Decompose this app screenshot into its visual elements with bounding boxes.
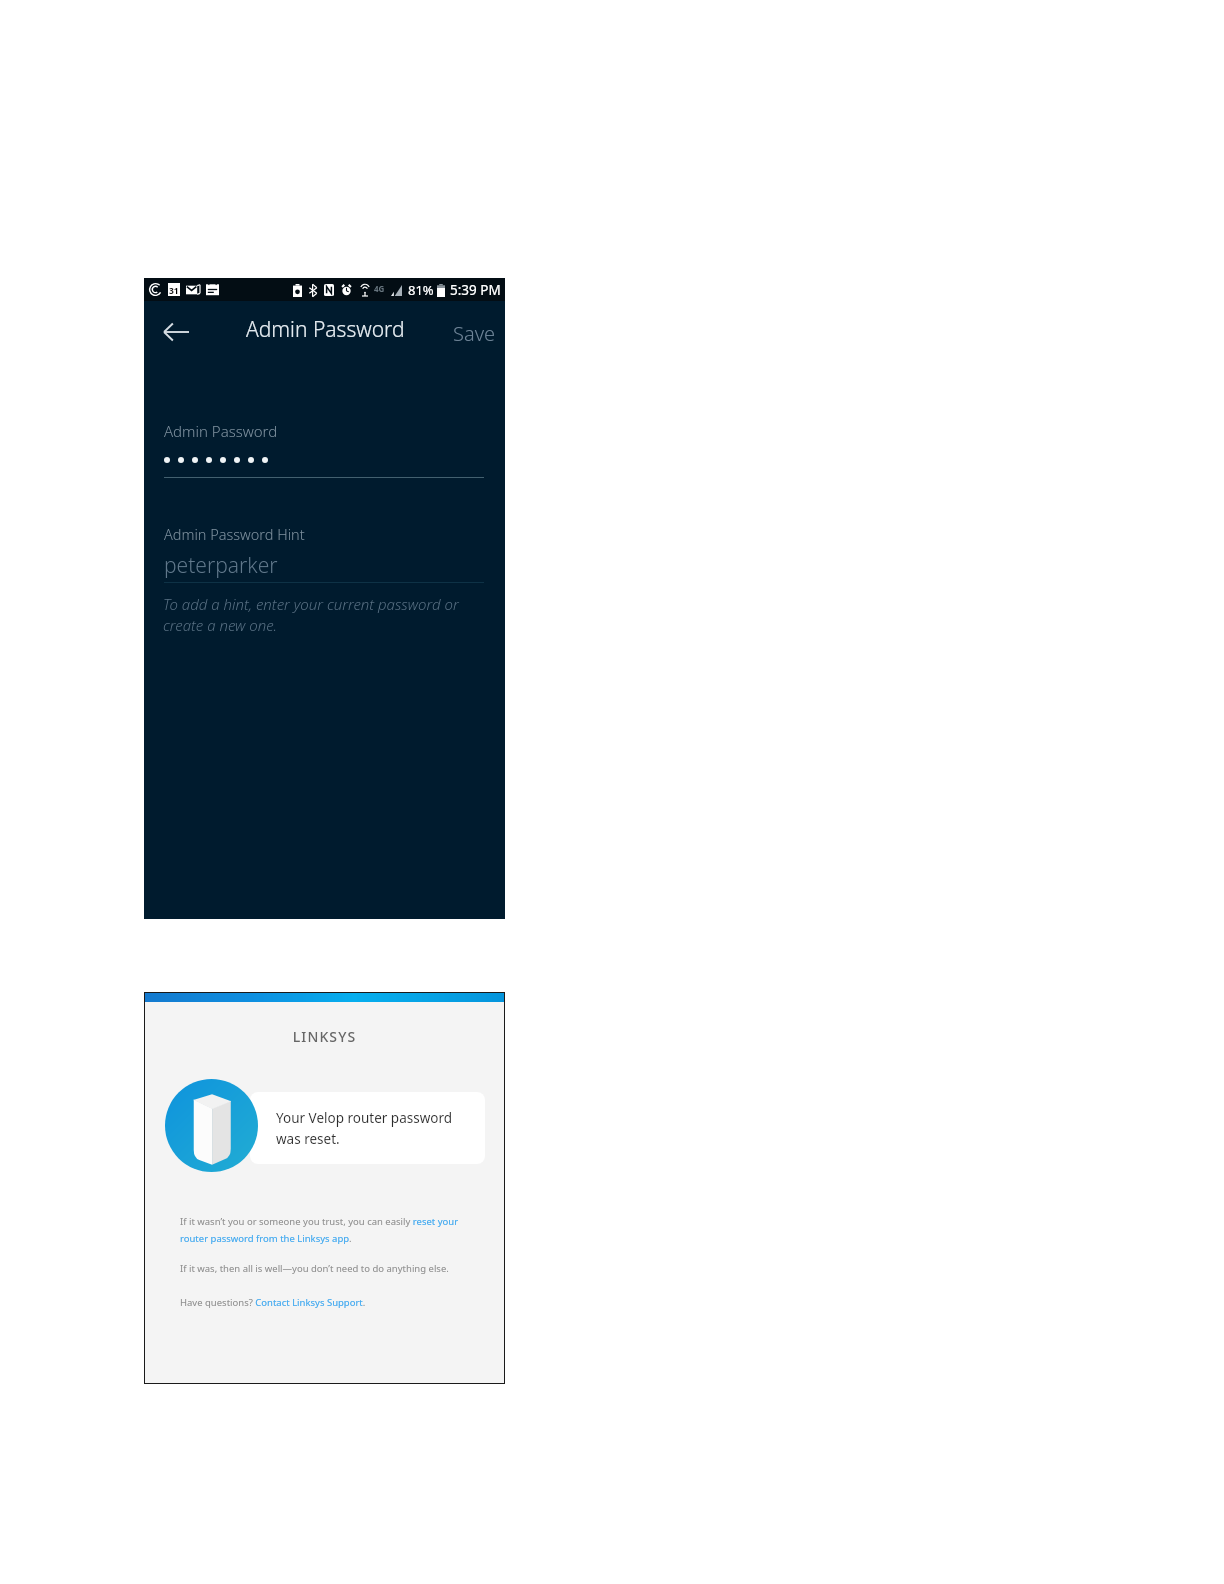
staticText: If it was, then all is well—you don’t ne… xyxy=(180,1262,449,1275)
staticText: peterparker xyxy=(164,551,278,580)
staticText: 31 xyxy=(169,285,179,297)
button[interactable]: If it wasn’t you or someone you trust, y… xyxy=(180,1215,459,1245)
staticText: 81% xyxy=(408,281,434,299)
button[interactable]: Admin Password Hint xyxy=(164,517,484,583)
staticText: Your Velop router password was reset. xyxy=(276,1109,453,1148)
staticText: To add a hint, enter your current passwo… xyxy=(163,594,459,636)
button[interactable]: Back xyxy=(150,308,202,356)
staticText: Save xyxy=(453,320,496,347)
staticText: Admin Password Hint xyxy=(164,524,305,544)
staticText: Admin Password xyxy=(164,421,278,441)
staticText: 5:39 PM xyxy=(450,281,501,299)
staticText: 4G xyxy=(374,283,385,294)
button[interactable]: Have questions? Contact Linksys Support. xyxy=(180,1296,366,1309)
staticText: Admin Password xyxy=(246,315,405,344)
button[interactable]: Save xyxy=(442,308,502,356)
staticText: LINKSYS xyxy=(144,1027,505,1046)
button[interactable]: Admin Password xyxy=(164,414,484,479)
